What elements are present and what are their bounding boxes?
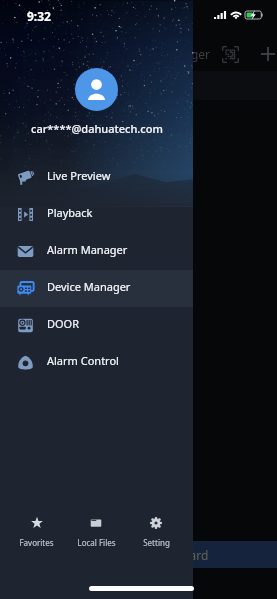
staticText: Alarm Manager [47,242,128,257]
button[interactable]: DOOR [0,307,193,344]
staticText: Card [182,547,209,563]
button[interactable]: Device Manager [0,270,193,307]
staticText: Local Files [77,537,116,548]
staticText: Setting [143,537,170,548]
button[interactable]: Setting [126,509,186,555]
staticText: Device Manager [47,279,131,294]
staticText: 9:32 [27,8,51,24]
staticText: Device Manager [119,46,210,62]
button[interactable]: Add device [257,43,277,65]
button[interactable]: Alarm Control [0,344,193,381]
button[interactable]: Favorites [7,509,66,555]
staticText: Live Preview [47,168,111,183]
staticText: car****@dahuatech.com [31,121,163,136]
button[interactable]: Playback [0,196,193,233]
staticText: Alarm Control [47,353,119,368]
button[interactable]: Scan QR code [219,43,241,65]
button[interactable]: Live Preview [0,159,193,196]
button[interactable]: Alarm Manager [0,233,193,270]
staticText: Favorites [19,537,54,548]
button[interactable] [75,68,118,111]
staticText: Playback [47,205,93,220]
staticText: DOOR [47,316,80,331]
button[interactable]: Local Files [66,509,126,555]
button[interactable]: Card [0,541,277,568]
